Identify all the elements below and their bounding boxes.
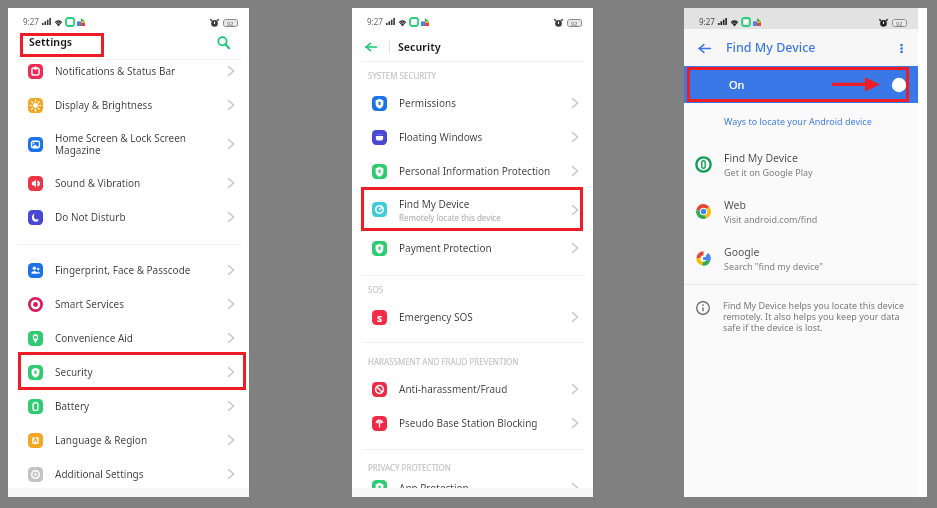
button[interactable]: Home Screen & Lock Screen Magazine: [8, 122, 249, 166]
staticText: Anti-harassment/Fraud: [399, 382, 572, 396]
staticText: SYSTEM SECURITY: [368, 70, 436, 81]
button[interactable]: Do Not Disturb: [8, 200, 249, 234]
button[interactable]: Personal Information Protection: [352, 154, 593, 188]
staticText: Visit android.com/find: [724, 213, 818, 225]
button[interactable]: App Protection: [352, 478, 593, 497]
staticText: Personal Information Protection: [399, 164, 572, 178]
staticText: App Protection: [399, 481, 572, 495]
button[interactable]: Security: [8, 355, 249, 389]
staticText: Fingerprint, Face & Passcode: [55, 263, 228, 277]
staticText: Security: [398, 40, 441, 54]
staticText: Google: [724, 245, 760, 259]
staticText: Convenience Aid: [55, 331, 228, 345]
staticText: Home Screen & Lock Screen Magazine: [55, 131, 228, 157]
staticText: Find My Device: [724, 151, 798, 165]
staticText: On: [729, 77, 891, 92]
staticText: Pseudo Base Station Blocking: [399, 416, 572, 430]
button[interactable]: Pseudo Base Station Blocking: [352, 406, 593, 440]
staticText: Additional Settings: [55, 467, 228, 481]
staticText: 92: [896, 20, 903, 27]
button[interactable]: On: [684, 66, 918, 103]
staticText: Emergency SOS: [399, 310, 572, 324]
button[interactable]: Find My Device: [352, 188, 593, 231]
staticText: Display & Brightness: [55, 98, 228, 112]
button[interactable]: Notifications & Status Bar: [8, 54, 249, 88]
staticText: SOS: [368, 284, 384, 295]
button[interactable]: Back: [361, 37, 381, 57]
staticText: Ways to locate your Android device: [724, 115, 918, 127]
button[interactable]: Sound & Vibration: [8, 166, 249, 200]
staticText: Permissions: [399, 96, 572, 110]
staticText: Settings: [29, 35, 73, 49]
button[interactable]: Battery: [8, 389, 249, 423]
staticText: PRIVACY PROTECTION: [368, 462, 451, 473]
staticText: 9:27: [699, 16, 715, 27]
staticText: Search "find my device": [724, 260, 824, 272]
button[interactable]: Convenience Aid: [8, 321, 249, 355]
staticText: Smart Services: [55, 297, 228, 311]
button[interactable]: Search: [213, 32, 233, 52]
button[interactable]: S: [352, 300, 593, 334]
staticText: 9:27: [367, 16, 383, 27]
button[interactable]: Find My Device: [684, 141, 918, 188]
button[interactable]: Anti-harassment/Fraud: [352, 372, 593, 406]
staticText: 92: [227, 20, 234, 27]
staticText: Battery: [55, 399, 228, 413]
staticText: 9:27: [23, 16, 39, 27]
button[interactable]: Smart Services: [8, 287, 249, 321]
staticText: Remotely locate this device: [399, 212, 501, 223]
staticText: Find My Device: [726, 39, 816, 56]
staticText: Find My Device helps you locate this dev…: [723, 299, 908, 333]
staticText: Find My Device: [399, 197, 470, 211]
button[interactable]: Web: [684, 188, 918, 235]
staticText: Notifications & Status Bar: [55, 64, 228, 78]
button[interactable]: Back: [694, 38, 714, 58]
button[interactable]: Additional Settings: [8, 457, 249, 491]
button[interactable]: Display & Brightness: [8, 88, 249, 122]
staticText: S: [377, 312, 382, 324]
staticText: Floating Windows: [399, 130, 572, 144]
button[interactable]: Language & Region: [8, 423, 249, 457]
staticText: Do Not Disturb: [55, 210, 228, 224]
button[interactable]: Floating Windows: [352, 120, 593, 154]
button[interactable]: Permissions: [352, 86, 593, 120]
staticText: 92: [571, 20, 578, 27]
staticText: Get it on Google Play: [724, 166, 813, 178]
staticText: Security: [55, 365, 228, 379]
staticText: Payment Protection: [399, 241, 572, 255]
staticText: HARASSMENT AND FRAUD PREVENTION: [368, 356, 519, 367]
staticText: Sound & Vibration: [55, 176, 228, 190]
button[interactable]: More options: [892, 39, 910, 57]
button[interactable]: Payment Protection: [352, 231, 593, 265]
button[interactable]: Google: [684, 235, 918, 282]
button[interactable]: Fingerprint, Face & Passcode: [8, 253, 249, 287]
staticText: Web: [724, 198, 746, 212]
staticText: Language & Region: [55, 433, 228, 447]
